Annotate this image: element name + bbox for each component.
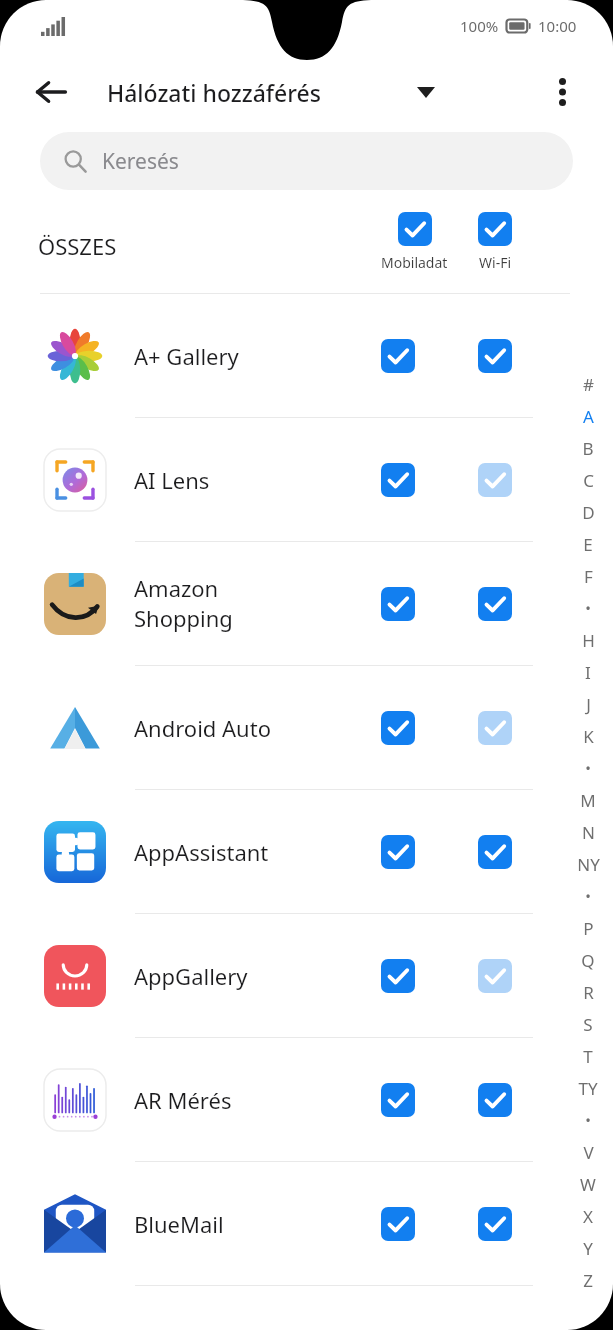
button[interactable]: Jelölőnégyzet (381, 1083, 415, 1117)
button[interactable]: Rendezés (404, 70, 448, 114)
button[interactable]: TY (565, 1072, 611, 1104)
button[interactable]: Jelölőnégyzet (478, 463, 512, 497)
button[interactable]: R (565, 976, 611, 1008)
staticText: 10:00 (538, 16, 577, 36)
button[interactable]: Jelölőnégyzet (478, 711, 512, 745)
button[interactable]: Jelölőnégyzet (381, 463, 415, 497)
button[interactable]: Q (565, 944, 611, 976)
staticText: Hálózati hozzáférés (107, 77, 321, 108)
button[interactable]: Jelölőnégyzet (478, 212, 512, 246)
button[interactable]: Jelölőnégyzet (478, 1207, 512, 1241)
staticText: A+ Gallery (134, 341, 239, 371)
staticText: D (582, 501, 595, 524)
staticText: X (583, 1205, 593, 1228)
button[interactable]: B (565, 432, 611, 464)
staticText: C (583, 469, 594, 492)
button[interactable]: C (565, 464, 611, 496)
button[interactable]: Jelölőnégyzet (478, 339, 512, 373)
button[interactable]: J (565, 688, 611, 720)
staticText: TY (578, 1077, 598, 1100)
button[interactable]: S (565, 1008, 611, 1040)
button[interactable]: • (565, 752, 611, 784)
staticText: AR Mérés (134, 1085, 232, 1115)
button[interactable]: Jelölőnégyzet (478, 1083, 512, 1117)
staticText: K (583, 725, 594, 748)
staticText: N (582, 821, 595, 844)
staticText: S (583, 1013, 593, 1036)
button[interactable]: Jelölőnégyzet (381, 835, 415, 869)
button[interactable]: • (565, 880, 611, 912)
button[interactable]: Jelölőnégyzet (381, 959, 415, 993)
button[interactable]: W (565, 1168, 611, 1200)
button[interactable]: Jelölőnégyzet (381, 339, 415, 373)
staticText: Y (583, 1237, 593, 1260)
staticText: R (583, 981, 594, 1004)
button[interactable]: A+ Gallery (0, 294, 613, 418)
button[interactable]: AR Mérés (0, 1038, 613, 1162)
staticText: Q (581, 949, 595, 972)
button[interactable]: További lehetőségek (537, 67, 587, 117)
button[interactable]: P (565, 912, 611, 944)
staticText: Android Auto (134, 713, 271, 743)
staticText: Amazon Shopping (134, 573, 233, 634)
button[interactable]: H (565, 624, 611, 656)
staticText: • (585, 886, 591, 906)
button[interactable]: E (565, 528, 611, 560)
button[interactable]: F (565, 560, 611, 592)
button[interactable]: Vissza (26, 67, 76, 117)
button[interactable]: Jelölőnégyzet (381, 1207, 415, 1241)
button[interactable]: Jelölőnégyzet (478, 835, 512, 869)
staticText: I (585, 661, 591, 684)
button[interactable]: # (565, 368, 611, 400)
button[interactable]: Jelölőnégyzet (381, 711, 415, 745)
button[interactable]: Jelölőnégyzet (478, 587, 512, 621)
button[interactable]: K (565, 720, 611, 752)
button[interactable]: D (565, 496, 611, 528)
button[interactable]: Keresés (40, 132, 573, 190)
staticText: Wi-Fi (479, 253, 512, 272)
staticText: E (583, 533, 593, 556)
staticText: Z (583, 1269, 593, 1292)
button[interactable]: X (565, 1200, 611, 1232)
staticText: V (583, 1141, 594, 1164)
staticText: B (582, 437, 594, 460)
button[interactable]: Jelölőnégyzet (398, 212, 432, 246)
staticText: T (583, 1045, 593, 1068)
button[interactable]: M (565, 784, 611, 816)
staticText: F (584, 565, 593, 588)
staticText: 100% (460, 16, 499, 36)
staticText: AppGallery (134, 961, 248, 991)
button[interactable]: V (565, 1136, 611, 1168)
button[interactable]: Android Auto (0, 666, 613, 790)
staticText: Mobiladat (381, 253, 448, 272)
staticText: H (582, 629, 595, 652)
button[interactable]: I (565, 656, 611, 688)
button[interactable]: N (565, 816, 611, 848)
staticText: • (585, 758, 591, 778)
staticText: P (583, 917, 594, 940)
button[interactable]: Z (565, 1264, 611, 1296)
button[interactable]: Jelölőnégyzet (381, 587, 415, 621)
button[interactable]: • (565, 592, 611, 624)
button[interactable]: A (565, 400, 611, 432)
button[interactable]: • (565, 1104, 611, 1136)
button[interactable]: T (565, 1040, 611, 1072)
button[interactable]: BlueMail (0, 1162, 613, 1286)
staticText: AI Lens (134, 465, 210, 495)
staticText: W (580, 1173, 596, 1196)
staticText: # (583, 373, 594, 396)
staticText: AppAssistant (134, 837, 269, 867)
staticText: BlueMail (134, 1209, 224, 1239)
button[interactable]: AI Lens (0, 418, 613, 542)
button[interactable]: Jelölőnégyzet (478, 959, 512, 993)
staticText: NY (577, 853, 600, 876)
staticText: A (583, 405, 594, 428)
button[interactable]: Amazon Shopping (0, 542, 613, 666)
button[interactable]: AppGallery (0, 914, 613, 1038)
button[interactable]: Y (565, 1232, 611, 1264)
staticText: ÖSSZES (38, 231, 117, 261)
button[interactable]: AppAssistant (0, 790, 613, 914)
staticText: J (586, 693, 591, 716)
staticText: • (585, 1110, 591, 1130)
button[interactable]: NY (565, 848, 611, 880)
